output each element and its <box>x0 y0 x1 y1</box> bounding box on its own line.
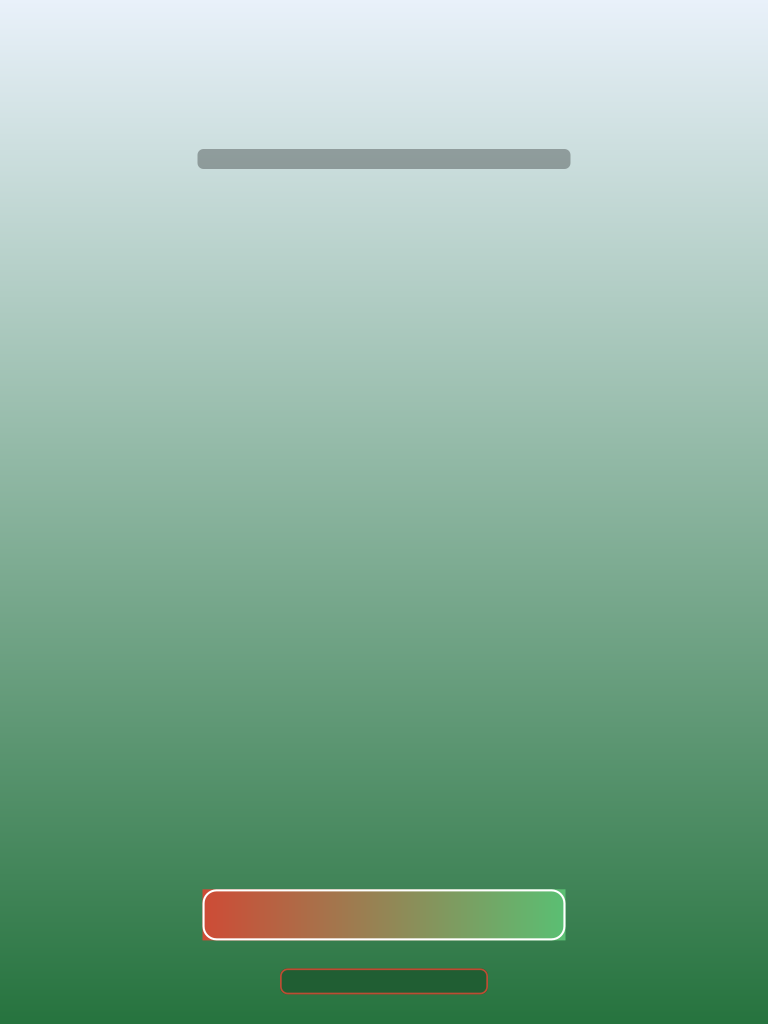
button[interactable]: Continue <box>202 889 565 940</box>
button[interactable]: More options <box>280 968 488 994</box>
button[interactable]: Progress <box>197 149 570 169</box>
